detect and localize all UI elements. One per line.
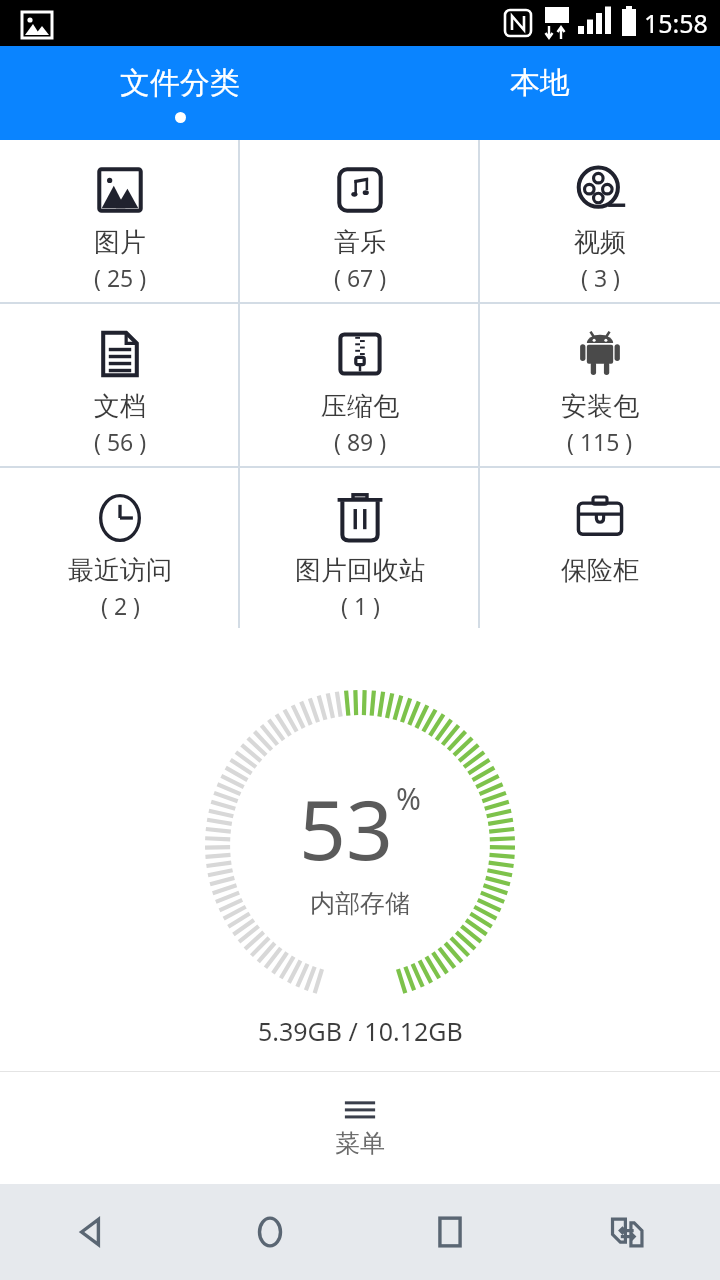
button[interactable]: 本地 <box>360 46 720 140</box>
button[interactable]: 安装包 <box>480 304 720 466</box>
staticText: ( 2 ) <box>101 590 140 621</box>
button[interactable]: 保险柜 <box>480 468 720 628</box>
button[interactable]: 最近访问 <box>0 468 240 628</box>
staticText: 文件分类 <box>120 64 240 102</box>
staticText: ( 56 ) <box>94 426 147 457</box>
button[interactable]: Home <box>180 1184 360 1280</box>
button[interactable]: 压缩包 <box>240 304 480 466</box>
staticText: ( 115 ) <box>567 426 633 457</box>
staticText: 内部存储 <box>310 888 410 919</box>
staticText: 安装包 <box>561 390 639 423</box>
button[interactable]: 图片 <box>0 140 240 302</box>
staticText: 图片回收站 <box>295 554 425 587</box>
staticText: 菜单 <box>335 1128 385 1159</box>
staticText: 音乐 <box>334 226 386 259</box>
staticText: ( 3 ) <box>581 262 620 293</box>
staticText: ( 67 ) <box>334 262 387 293</box>
staticText: 图片 <box>94 226 146 259</box>
button[interactable]: 文档 <box>0 304 240 466</box>
button[interactable]: 菜单 <box>0 1072 720 1184</box>
staticText: 5.39GB / 10.12GB <box>258 1014 463 1048</box>
staticText: 本地 <box>510 64 570 102</box>
button[interactable]: Recents <box>360 1184 540 1280</box>
button[interactable]: Split screen <box>540 1184 720 1280</box>
staticText: 文档 <box>94 390 146 423</box>
button[interactable]: 文件分类 <box>0 46 360 140</box>
button[interactable]: 音乐 <box>240 140 480 302</box>
staticText: 最近访问 <box>68 554 172 587</box>
staticText: 53 <box>299 772 393 884</box>
staticText: ( 1 ) <box>341 590 380 621</box>
staticText: ( 89 ) <box>334 426 387 457</box>
staticText: ( 25 ) <box>94 262 147 293</box>
staticText: % <box>396 778 421 819</box>
button[interactable]: 图片回收站 <box>240 468 480 628</box>
staticText: 视频 <box>574 226 626 259</box>
staticText: 保险柜 <box>561 554 639 587</box>
button[interactable]: Back <box>0 1184 180 1280</box>
staticText: 压缩包 <box>321 390 399 423</box>
button[interactable]: 视频 <box>480 140 720 302</box>
staticText: 15:58 <box>644 6 708 40</box>
